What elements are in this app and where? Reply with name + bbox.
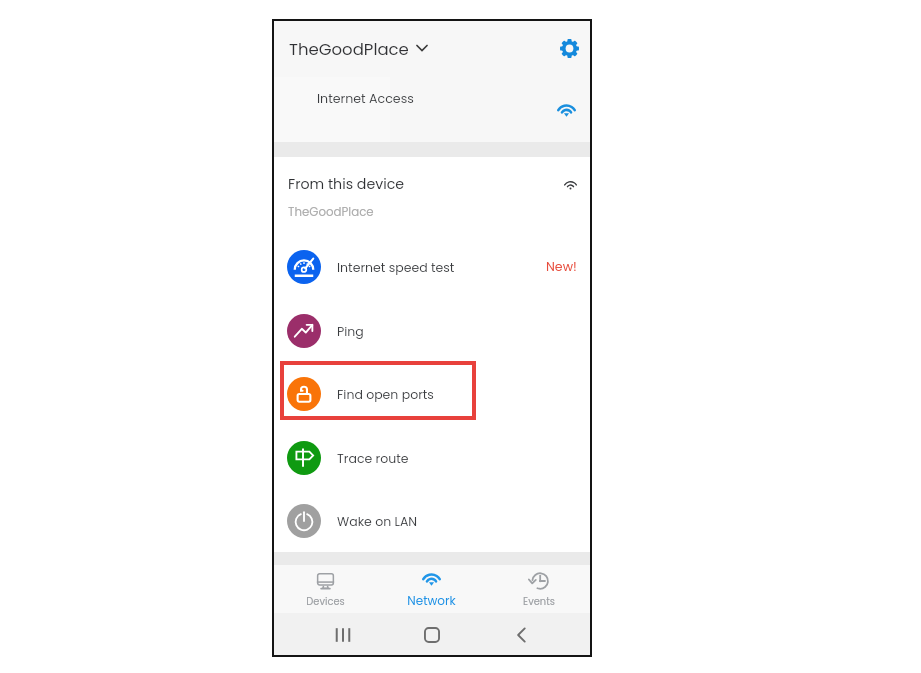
- staticText: Ping: [337, 323, 364, 340]
- staticText: Trace route: [337, 450, 409, 467]
- staticText: Events: [523, 595, 555, 609]
- staticText: New!: [546, 258, 577, 276]
- button[interactable]: Devices: [272, 565, 378, 615]
- staticText: Internet speed test: [337, 259, 455, 276]
- button[interactable]: Back: [510, 624, 532, 646]
- button[interactable]: Ping: [272, 305, 592, 357]
- button[interactable]: Settings: [555, 34, 584, 63]
- staticText: Devices: [306, 595, 345, 609]
- staticText: Find open ports: [337, 386, 434, 403]
- button[interactable]: Wake on LAN: [272, 495, 592, 547]
- button[interactable]: Trace route: [272, 432, 592, 484]
- button[interactable]: Events: [485, 565, 592, 615]
- button[interactable]: Home: [421, 624, 443, 646]
- staticText: Wake on LAN: [337, 513, 418, 530]
- button[interactable]: Network: [378, 565, 485, 615]
- button[interactable]: Internet speed test: [272, 241, 592, 293]
- staticText: TheGoodPlace: [288, 204, 374, 221]
- staticText: Network: [407, 592, 456, 609]
- button[interactable]: TheGoodPlace: [289, 33, 428, 65]
- staticText: Internet Access: [317, 90, 414, 108]
- staticText: From this device: [288, 174, 405, 194]
- button[interactable]: Recent apps: [332, 624, 354, 646]
- button[interactable]: Find open ports: [272, 368, 592, 420]
- staticText: TheGoodPlace: [289, 38, 409, 61]
